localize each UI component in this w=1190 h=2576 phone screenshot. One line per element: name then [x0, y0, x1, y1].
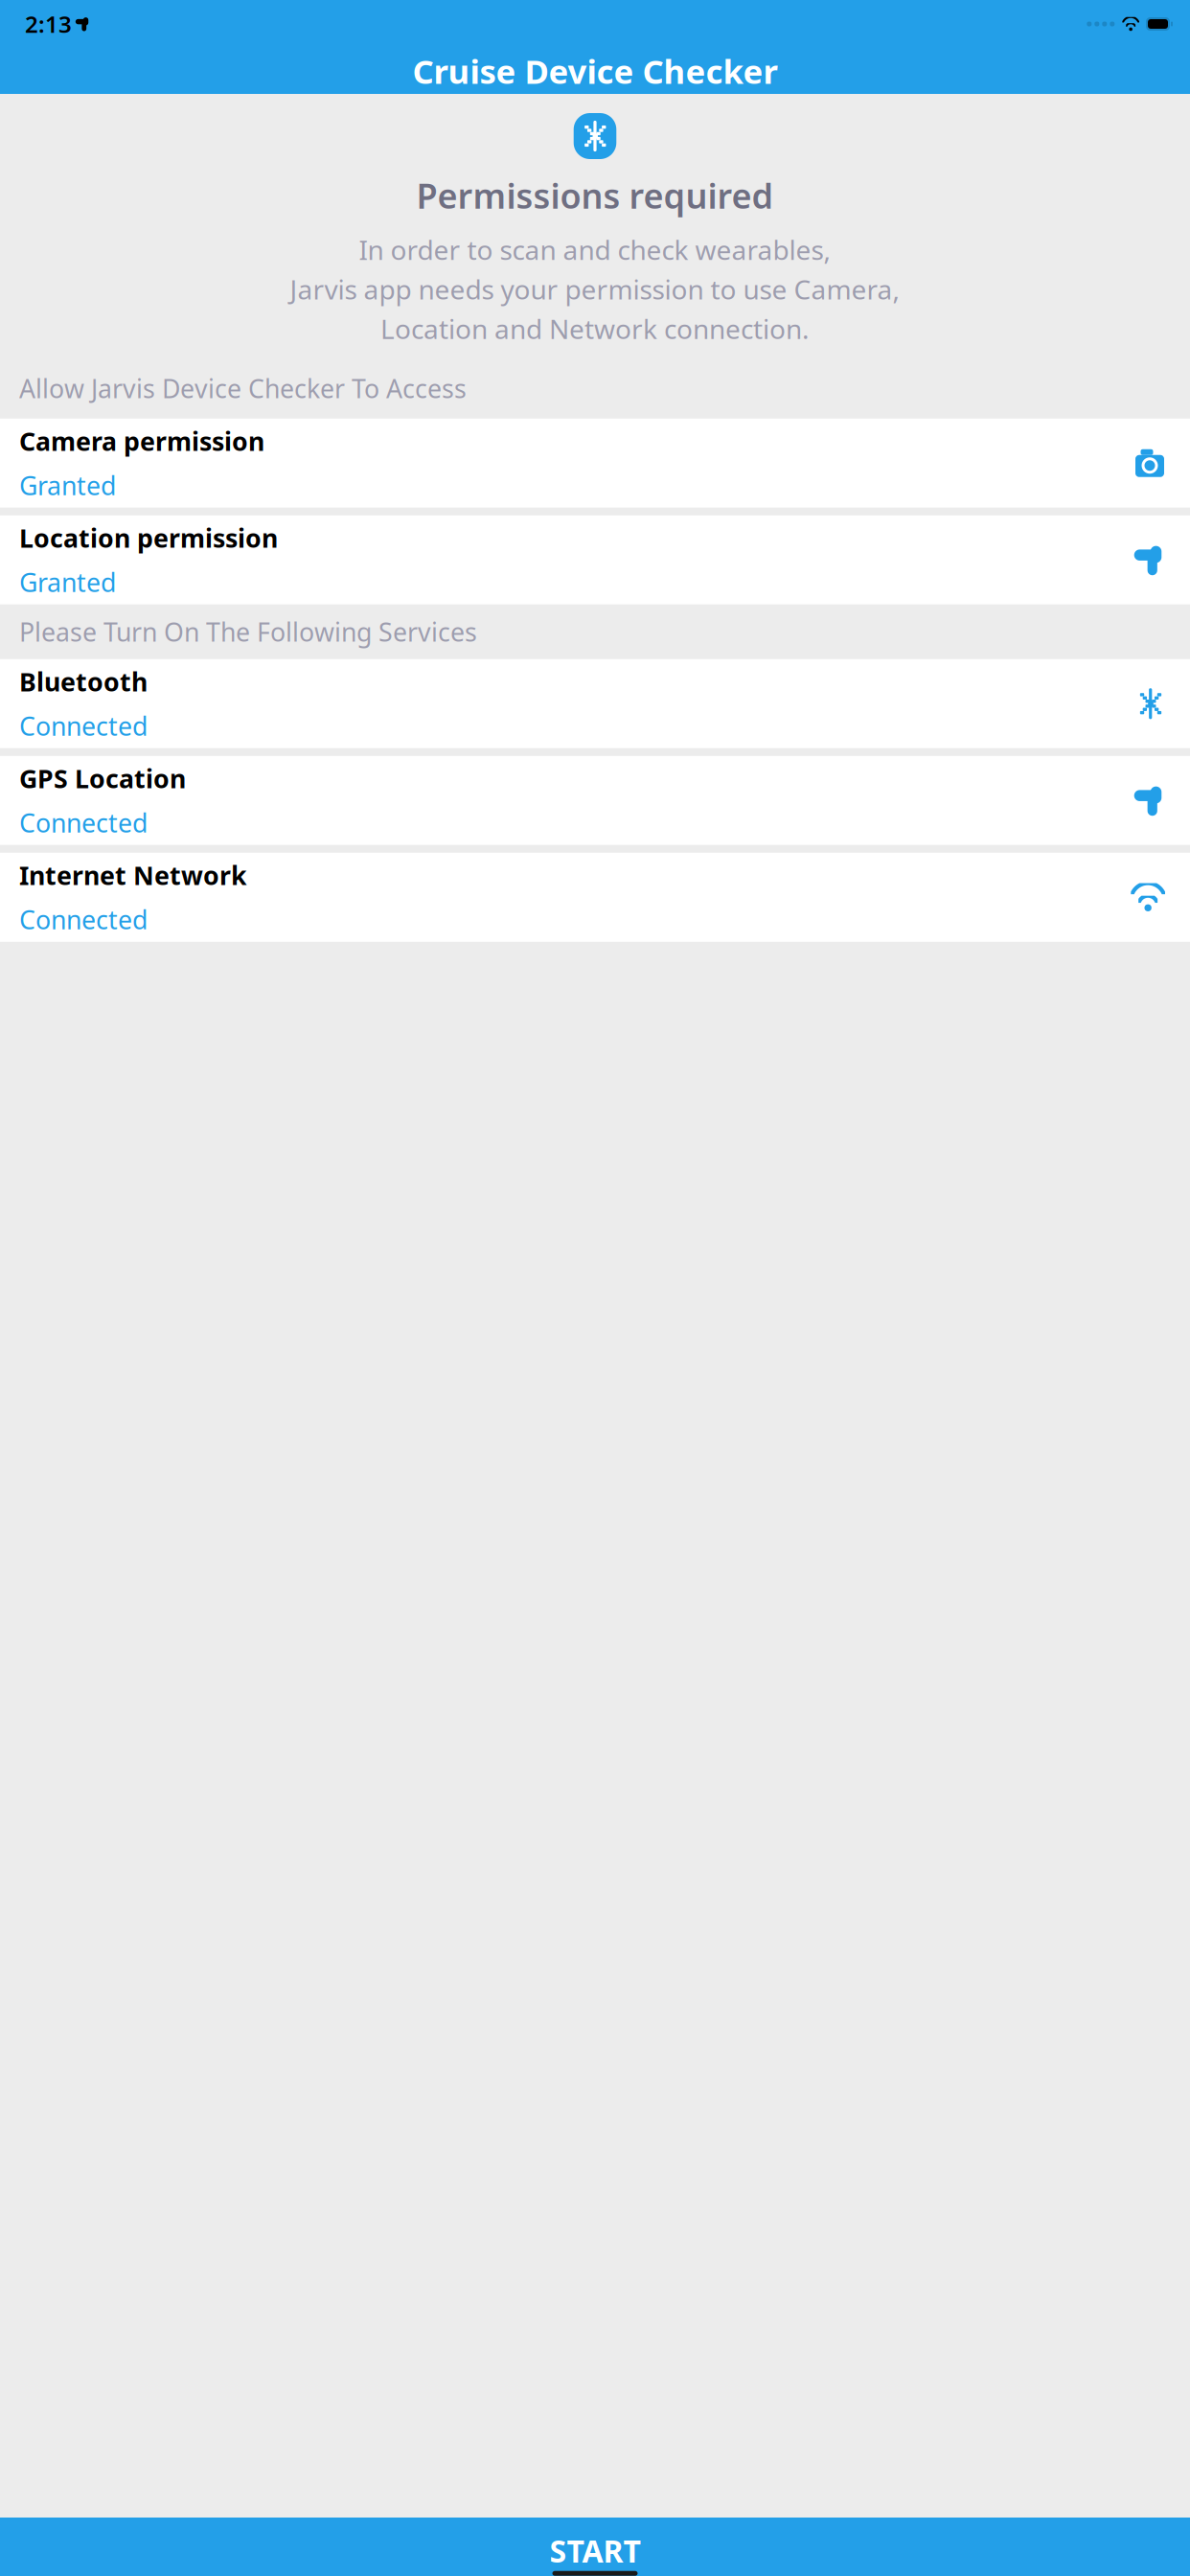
button[interactable]: START	[0, 2518, 1190, 2576]
staticText: Allow Jarvis Device Checker To Access	[19, 371, 467, 405]
staticText: Camera permission	[19, 424, 264, 458]
staticText: Granted	[19, 565, 116, 599]
staticText: Connected	[19, 903, 148, 936]
staticText: Location and Network connection.	[380, 311, 810, 346]
button[interactable]: Internet Network	[0, 853, 1190, 942]
button[interactable]: Bluetooth	[0, 659, 1190, 748]
button[interactable]: Location permission	[0, 515, 1190, 605]
staticText: Granted	[19, 468, 116, 502]
button[interactable]: Camera permission	[0, 419, 1190, 508]
staticText: GPS Location	[19, 761, 186, 795]
staticText: Connected	[19, 806, 148, 840]
staticText: Connected	[19, 709, 148, 743]
staticText: 2:13	[25, 9, 72, 39]
staticText: Internet Network	[19, 858, 247, 892]
staticText: Permissions required	[416, 172, 774, 218]
staticText: Bluetooth	[19, 665, 148, 698]
staticText: Cruise Device Checker	[412, 49, 778, 93]
staticText: Jarvis app needs your permission to use …	[290, 271, 900, 307]
staticText: Please Turn On The Following Services	[19, 615, 477, 649]
staticText: In order to scan and check wearables,	[359, 232, 831, 267]
staticText: START	[549, 2530, 641, 2571]
button[interactable]: GPS Location	[0, 756, 1190, 845]
staticText: Location permission	[19, 521, 278, 555]
